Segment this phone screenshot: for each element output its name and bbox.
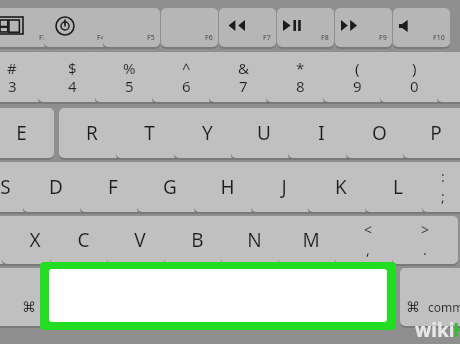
staticText: , — [366, 240, 370, 259]
staticText: L — [393, 174, 403, 200]
button[interactable]: ( 9 — [323, 52, 391, 102]
staticText: 5 — [125, 76, 134, 96]
button[interactable]: & 7 — [209, 52, 277, 102]
staticText: F — [108, 174, 118, 200]
button[interactable]: Y — [174, 108, 240, 158]
staticText: S — [0, 174, 11, 200]
button[interactable]: ) 0 — [380, 52, 448, 102]
button[interactable]: V — [107, 216, 173, 264]
button[interactable]: C — [50, 216, 116, 264]
button[interactable]: F — [80, 162, 146, 212]
staticText: C — [77, 227, 90, 253]
staticText: I — [318, 120, 325, 146]
button[interactable]: Rewind F7 — [219, 8, 276, 47]
button[interactable]: D — [23, 162, 89, 212]
button[interactable]: P — [403, 108, 460, 158]
button[interactable]: F5 — [103, 8, 160, 47]
staticText: ; — [441, 187, 445, 206]
button[interactable]: G — [137, 162, 203, 212]
button[interactable]: I — [288, 108, 354, 158]
staticText: H — [220, 174, 235, 200]
button[interactable]: Space bar — [40, 262, 396, 330]
button[interactable]: Comma less than — [335, 216, 401, 264]
staticText: . — [423, 240, 427, 259]
staticText: : — [441, 167, 445, 186]
staticText: ( — [355, 58, 360, 78]
staticText: 3 — [8, 76, 17, 96]
staticText: O — [372, 120, 387, 146]
staticText: F3 — [39, 33, 47, 43]
button[interactable]: M — [278, 216, 344, 264]
staticText: F9 — [379, 33, 387, 43]
button[interactable]: J — [251, 162, 317, 212]
staticText: M — [302, 227, 320, 253]
staticText: R — [86, 120, 98, 146]
staticText: V — [134, 227, 146, 253]
button[interactable]: # 3 — [0, 52, 46, 102]
button[interactable]: X — [2, 216, 68, 264]
staticText: K — [335, 174, 347, 200]
staticText: $ — [68, 58, 77, 78]
button[interactable]: R — [59, 108, 125, 158]
button[interactable]: N — [221, 216, 287, 264]
button[interactable]: * 8 — [266, 52, 334, 102]
button[interactable]: T — [116, 108, 182, 158]
button[interactable]: Fast forward F9 — [335, 8, 392, 47]
button[interactable]: % 5 — [95, 52, 163, 102]
staticText: ⌘ — [406, 299, 420, 315]
button[interactable]: E — [0, 108, 54, 158]
staticText: F4 — [97, 33, 105, 43]
staticText: 4 — [68, 76, 77, 96]
staticText: 6 — [182, 76, 191, 96]
button[interactable]: Z — [0, 216, 26, 264]
button[interactable]: O — [346, 108, 412, 158]
staticText: ) — [412, 58, 417, 78]
staticText: E — [16, 120, 27, 146]
button[interactable]: Mute F10 — [393, 8, 450, 47]
button[interactable]: K — [308, 162, 374, 212]
staticText: 0 — [410, 76, 419, 96]
staticText: How — [453, 317, 460, 343]
button[interactable]: Period greater than — [392, 216, 458, 264]
button[interactable]: $ 4 — [38, 52, 106, 102]
staticText: & — [238, 58, 249, 78]
button[interactable]: Colon semicolon — [422, 162, 460, 212]
button[interactable]: Left command — [0, 268, 44, 326]
staticText: 7 — [239, 76, 248, 96]
button[interactable]: _ - — [437, 52, 460, 102]
staticText: % — [123, 58, 136, 78]
button[interactable]: Launchpad F4 — [44, 8, 110, 47]
staticText: F7 — [263, 33, 271, 43]
staticText: F8 — [321, 33, 329, 43]
staticText: ^ — [182, 58, 191, 78]
button[interactable]: Mission Control F3 — [0, 8, 52, 47]
staticText: F6 — [205, 33, 213, 43]
button[interactable]: F6 — [161, 8, 218, 47]
staticText: D — [49, 174, 63, 200]
staticText: G — [163, 174, 177, 200]
button[interactable]: B — [164, 216, 230, 264]
staticText: N — [247, 227, 262, 253]
staticText: F10 — [433, 33, 445, 43]
button[interactable]: Play Pause F8 — [277, 8, 334, 47]
staticText: ⌘ — [22, 299, 36, 315]
staticText: # — [7, 58, 17, 78]
staticText: command — [428, 299, 460, 315]
staticText: wiki — [415, 317, 455, 343]
staticText: F5 — [147, 33, 155, 43]
button[interactable]: ^ 6 — [152, 52, 220, 102]
staticText: < — [364, 220, 373, 239]
button[interactable]: H — [194, 162, 260, 212]
button[interactable]: L — [365, 162, 431, 212]
staticText: 9 — [353, 76, 362, 96]
button[interactable]: U — [231, 108, 297, 158]
staticText: P — [430, 120, 442, 146]
button[interactable]: Right command — [400, 268, 460, 326]
staticText: B — [191, 227, 204, 253]
staticText: T — [144, 120, 155, 146]
staticText: 8 — [296, 76, 305, 96]
staticText: * — [296, 58, 305, 78]
button[interactable]: S — [0, 162, 38, 212]
staticText: Y — [202, 120, 213, 146]
staticText: > — [421, 220, 430, 239]
